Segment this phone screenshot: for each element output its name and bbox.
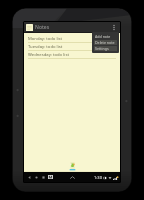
- staticText: Monday: todo list: [28, 36, 63, 42]
- button[interactable]: App icon, navigate up: [26, 24, 33, 31]
- staticText: Notes: [35, 24, 50, 31]
- staticText: 1:30: [94, 175, 102, 180]
- button[interactable]: Add note: [94, 34, 117, 39]
- button[interactable]: Status: battery, wifi, signal: [94, 175, 118, 180]
- staticText: Wednesday: todo list: [28, 52, 69, 58]
- button[interactable]: Delete note: [94, 40, 117, 45]
- staticText: Settings: [95, 46, 109, 51]
- staticText: Add note: [95, 34, 111, 39]
- button[interactable]: Home: [33, 173, 40, 181]
- button[interactable]: Show notifications: [68, 173, 76, 181]
- staticText: Tuesday: todo list: [28, 44, 63, 50]
- button[interactable]: Monday: todo list: [24, 33, 120, 172]
- button[interactable]: Back: [26, 173, 33, 181]
- button[interactable]: Keyboard: [47, 173, 54, 181]
- button[interactable]: Recent apps: [40, 173, 47, 181]
- staticText: Delete note: [95, 40, 115, 45]
- other: Insert handle: [69, 162, 76, 171]
- button[interactable]: Settings: [94, 46, 117, 51]
- button[interactable]: Notes: [35, 22, 110, 33]
- button[interactable]: More options: [110, 22, 118, 33]
